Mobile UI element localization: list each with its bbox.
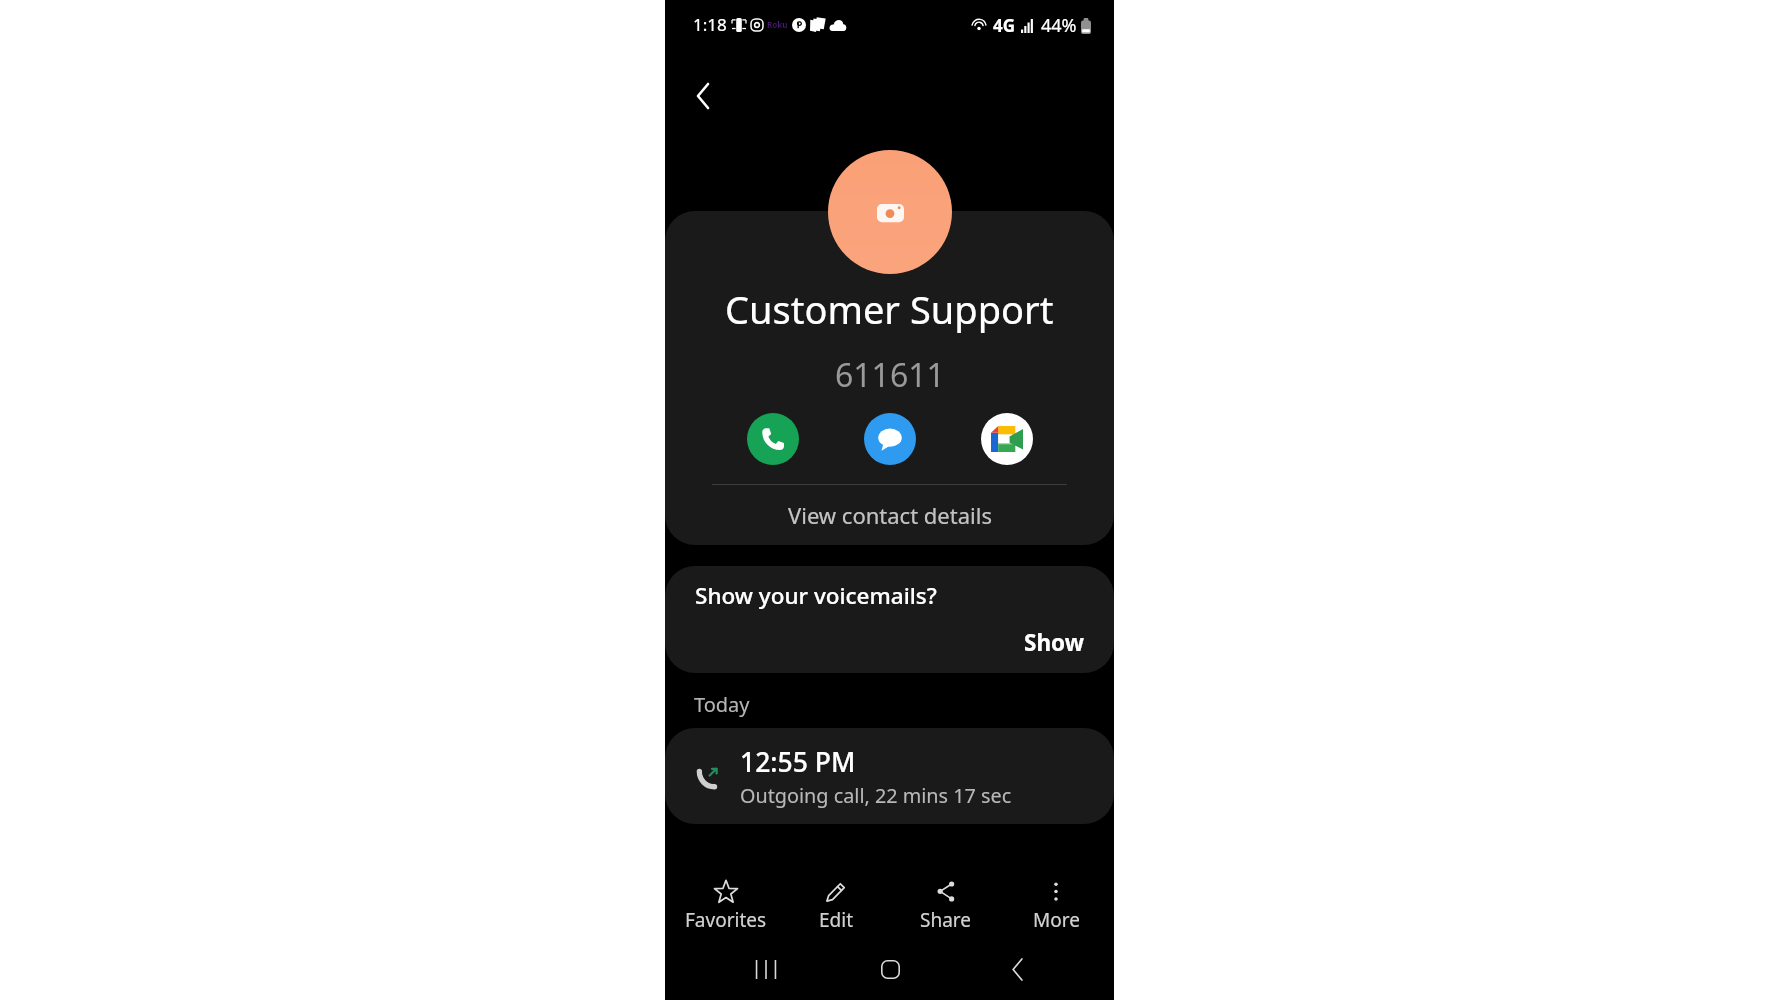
button[interactable]: Back (993, 945, 1041, 993)
staticText: 1:18 (693, 13, 727, 36)
button[interactable]: More (1001, 863, 1111, 933)
staticText: View contact details (788, 500, 992, 530)
staticText: Show (1024, 627, 1084, 658)
staticText: 611611 (835, 353, 945, 397)
staticText: Outgoing call, 22 mins 17 sec (740, 782, 1012, 809)
button[interactable]: Show your voicemails? (665, 566, 1114, 673)
button[interactable]: Contact photo (828, 150, 952, 274)
staticText: Customer Support (725, 283, 1054, 335)
button[interactable]: Edit (781, 863, 891, 933)
staticText: Share (920, 907, 972, 933)
staticText: More (1033, 907, 1080, 933)
staticText: Favorites (685, 907, 767, 933)
button[interactable]: Share (891, 863, 1001, 933)
button[interactable]: Call (747, 413, 799, 465)
button[interactable]: Home (866, 945, 914, 993)
button[interactable]: 12:55 PM (665, 728, 1114, 824)
button[interactable]: Message (864, 413, 916, 465)
button[interactable]: Recents (742, 945, 790, 993)
staticText: 44% (1041, 13, 1077, 38)
button[interactable]: Favorites (671, 863, 781, 933)
staticText: Roku (767, 19, 788, 30)
staticText: Today (694, 691, 750, 718)
button[interactable]: Video call (981, 413, 1033, 465)
staticText: 4G (993, 14, 1016, 37)
staticText: 12:55 PM (740, 744, 856, 780)
button[interactable]: Back (679, 72, 727, 120)
button[interactable]: View contact details (665, 485, 1114, 545)
staticText: Edit (819, 907, 854, 933)
staticText: Show your voicemails? (695, 580, 937, 611)
